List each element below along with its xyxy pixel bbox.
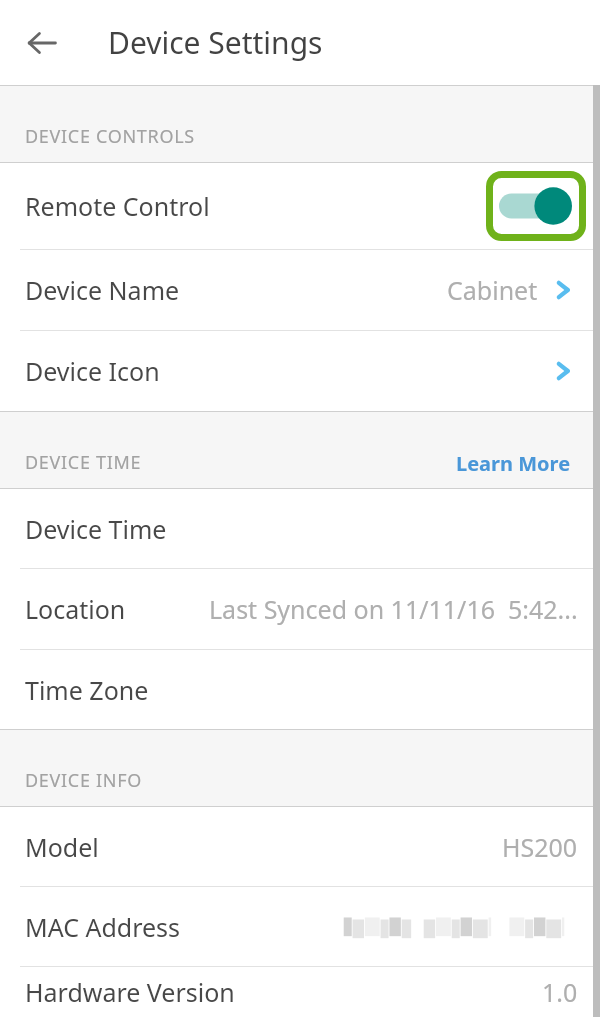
staticText: HS200 bbox=[502, 830, 578, 864]
staticText: Device Icon bbox=[25, 354, 160, 388]
button[interactable]: Remote Control toggle bbox=[499, 186, 573, 226]
staticText: DEVICE CONTROLS bbox=[25, 124, 195, 149]
button[interactable]: Device Name bbox=[0, 250, 600, 330]
staticText: Location bbox=[25, 592, 126, 626]
staticText: DEVICE INFO bbox=[25, 768, 142, 793]
staticText: 1.0 bbox=[542, 975, 578, 1009]
staticText: Device Time bbox=[25, 512, 167, 546]
button[interactable]: Hardware Version bbox=[0, 967, 600, 1017]
button[interactable]: Remote Control bbox=[0, 163, 600, 249]
button[interactable]: Model bbox=[0, 807, 600, 886]
button[interactable]: Device Time bbox=[0, 489, 600, 568]
button[interactable]: Device Icon bbox=[0, 331, 600, 411]
staticText: Remote Control bbox=[25, 189, 210, 223]
staticText: Model bbox=[25, 830, 99, 864]
staticText: Time Zone bbox=[25, 673, 149, 707]
button[interactable]: Time Zone bbox=[0, 650, 600, 729]
button[interactable]: MAC Address bbox=[0, 887, 600, 966]
staticText: DEVICE TIME bbox=[25, 450, 142, 475]
staticText: Cabinet bbox=[447, 273, 538, 307]
staticText: MAC Address bbox=[25, 910, 181, 944]
staticText: Learn More bbox=[456, 450, 571, 477]
button[interactable]: Back bbox=[16, 17, 68, 69]
button[interactable]: Location bbox=[0, 569, 600, 649]
staticText: Last Synced on 11/11/16 5:42... bbox=[209, 592, 578, 626]
staticText: Device Settings bbox=[108, 22, 323, 63]
staticText: Device Name bbox=[25, 273, 180, 307]
button[interactable]: Learn More bbox=[454, 448, 573, 479]
staticText: Hardware Version bbox=[25, 975, 235, 1009]
